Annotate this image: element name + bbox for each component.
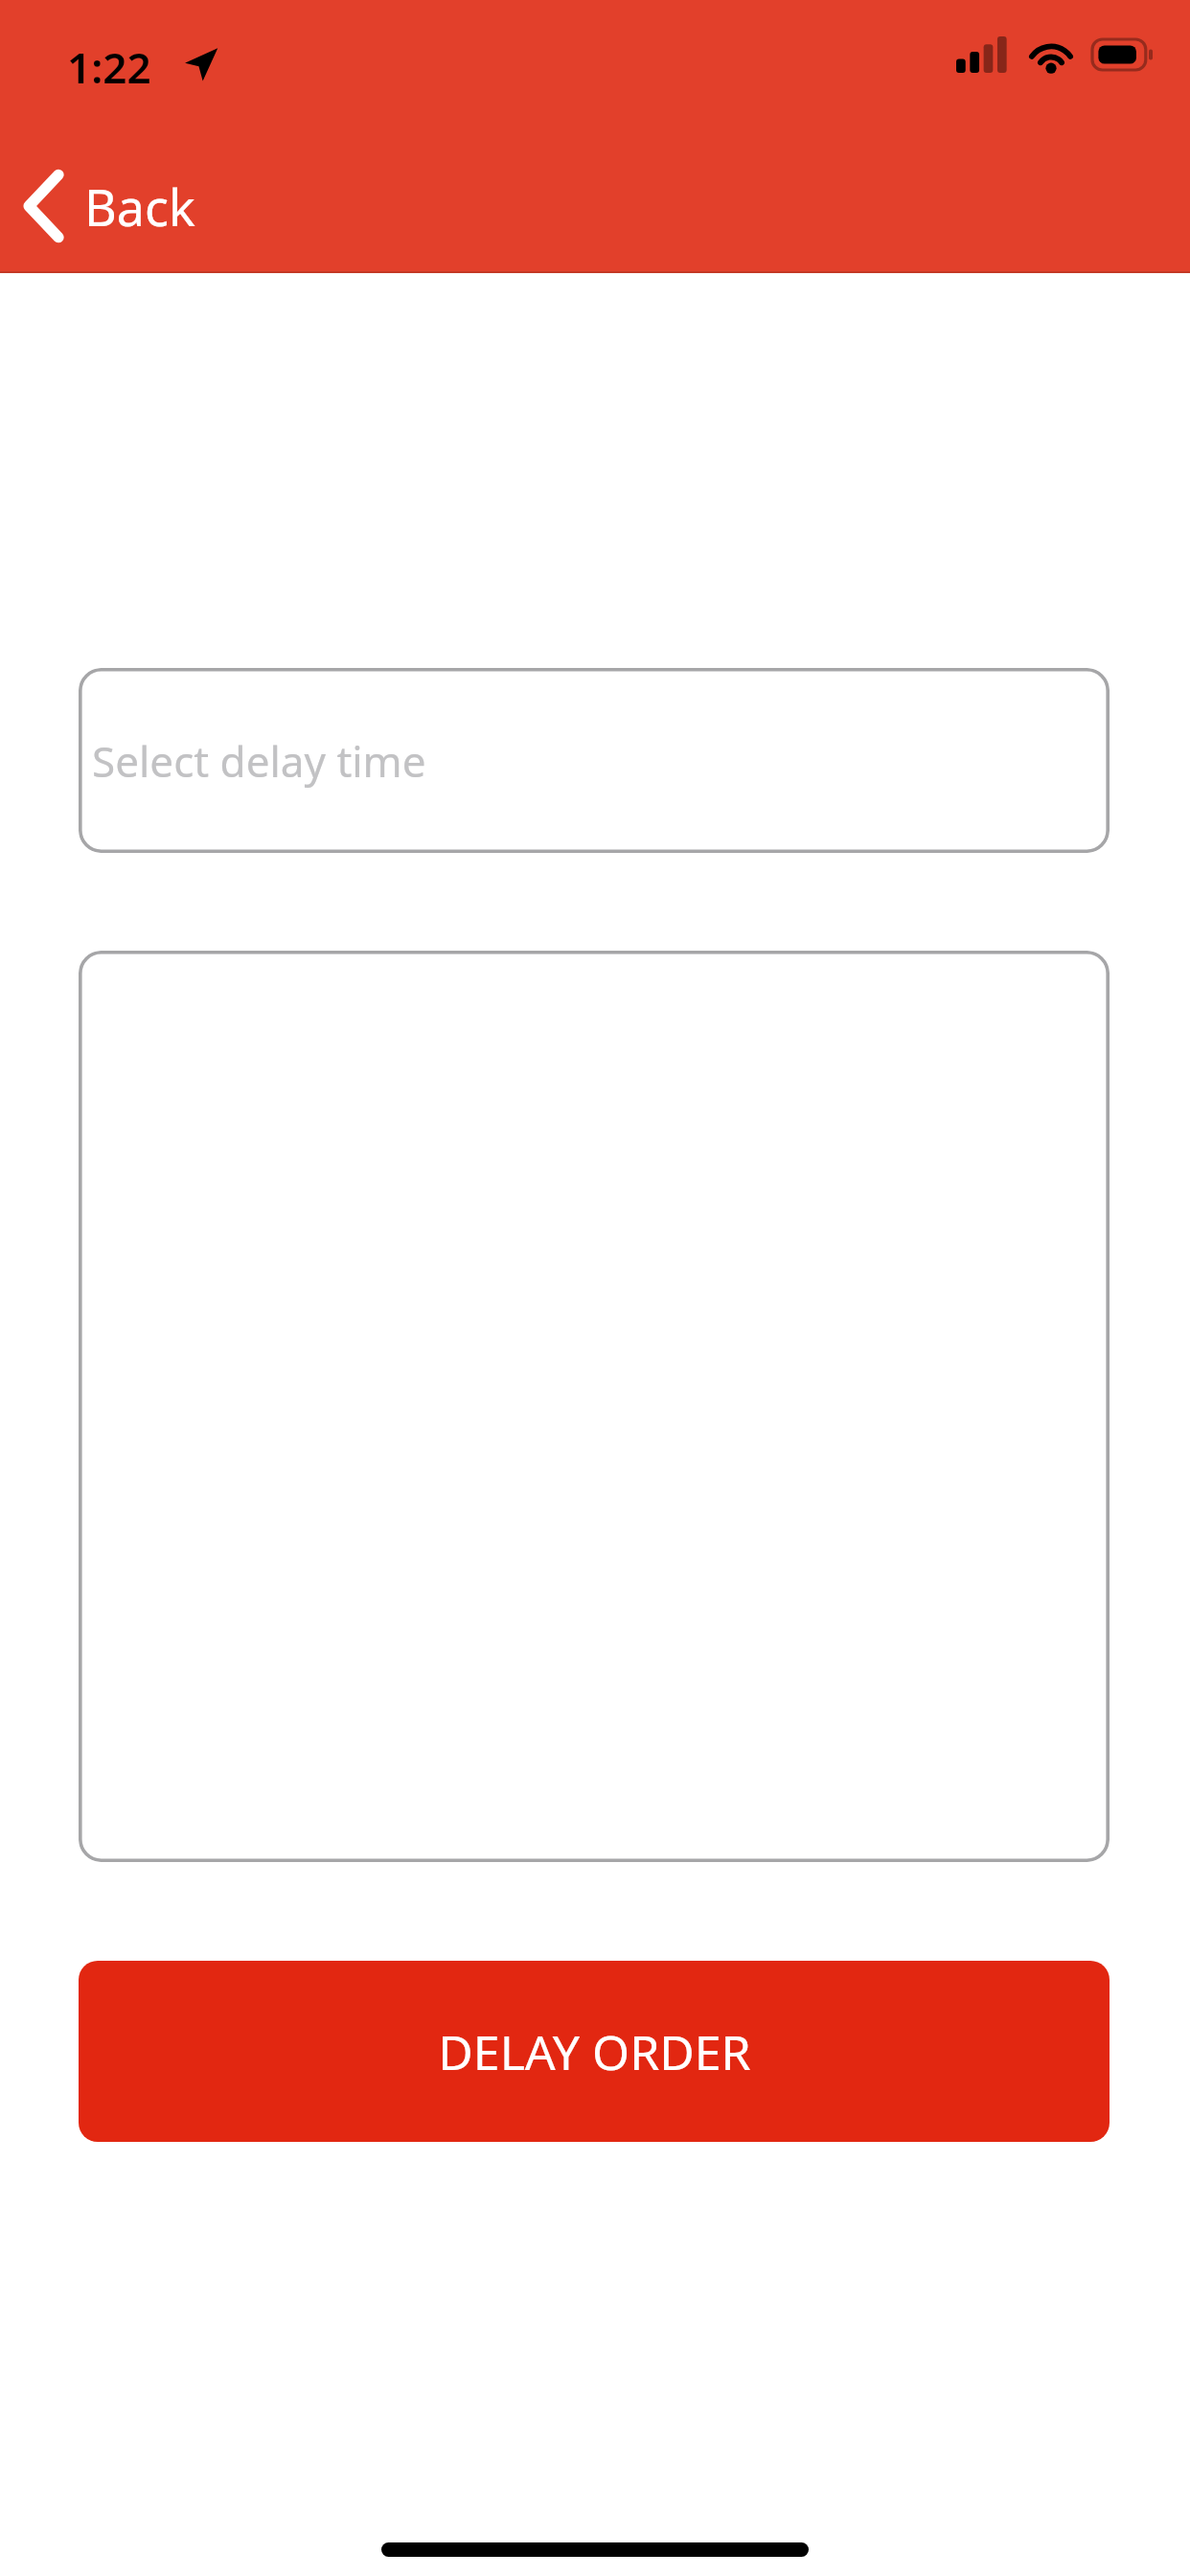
staticText: Select delay time xyxy=(92,732,426,790)
staticText: Back xyxy=(84,172,195,241)
button[interactable]: Select delay time xyxy=(79,668,1110,853)
button[interactable] xyxy=(79,951,1110,1862)
staticText: DELAY ORDER xyxy=(438,2019,751,2084)
button[interactable]: Back xyxy=(10,153,259,259)
button[interactable]: DELAY ORDER xyxy=(79,1961,1110,2142)
staticText: 1:22 xyxy=(67,38,151,96)
